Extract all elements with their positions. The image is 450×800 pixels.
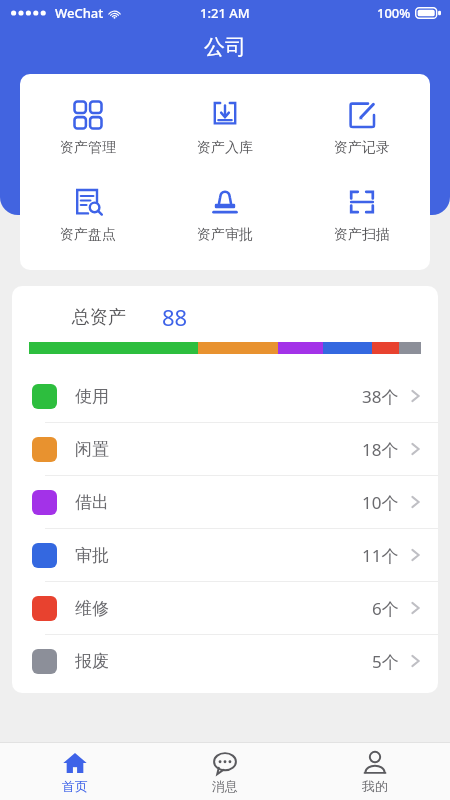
staticText: 审批 — [75, 545, 109, 566]
staticText: 总资产 — [72, 306, 126, 329]
staticText: 资产扫描 — [334, 226, 390, 244]
staticText: 10个 — [362, 491, 399, 514]
staticText: 首页 — [62, 778, 88, 794]
button[interactable]: 使用 — [12, 370, 438, 422]
button[interactable]: 借出 — [12, 476, 438, 528]
staticText: 借出 — [75, 492, 109, 513]
button[interactable]: 审批 — [12, 529, 438, 581]
staticText: 资产审批 — [197, 226, 253, 244]
staticText: 38个 — [362, 385, 399, 408]
button[interactable]: 资产盘点 — [20, 183, 156, 248]
staticText: 公司 — [204, 34, 246, 60]
staticText: 维修 — [75, 598, 109, 619]
staticText: 11个 — [362, 544, 399, 567]
staticText: 闲置 — [75, 439, 109, 460]
button[interactable]: 我的 — [300, 743, 450, 800]
staticText: 资产入库 — [197, 139, 253, 157]
staticText: 100% — [377, 4, 411, 22]
staticText: 88 — [162, 302, 188, 332]
staticText: 我的 — [362, 778, 388, 794]
staticText: 资产管理 — [60, 139, 116, 157]
staticText: 1:21 AM — [200, 4, 250, 22]
staticText: WeChat — [55, 4, 104, 22]
staticText: 18个 — [362, 438, 399, 461]
staticText: 资产盘点 — [60, 226, 116, 244]
button[interactable]: 首页 — [0, 743, 150, 800]
staticText: 资产记录 — [334, 139, 390, 157]
button[interactable]: 资产入库 — [156, 96, 293, 161]
button[interactable]: 消息 — [150, 743, 300, 800]
button[interactable]: 资产扫描 — [293, 183, 430, 248]
button[interactable]: 维修 — [12, 582, 438, 634]
button[interactable]: 资产审批 — [156, 183, 293, 248]
button[interactable]: 资产记录 — [293, 96, 430, 161]
staticText: 消息 — [212, 778, 238, 794]
button[interactable]: 报废 — [12, 635, 438, 687]
staticText: 报废 — [75, 651, 109, 672]
staticText: 使用 — [75, 386, 109, 407]
staticText: 6个 — [372, 597, 399, 620]
staticText: 5个 — [372, 650, 399, 673]
button[interactable]: 闲置 — [12, 423, 438, 475]
button[interactable]: 资产管理 — [20, 96, 156, 161]
